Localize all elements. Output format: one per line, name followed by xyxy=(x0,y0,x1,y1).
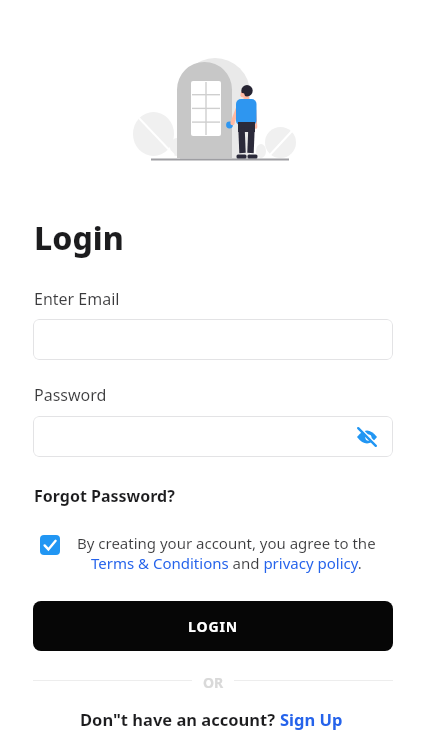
staticText: Login xyxy=(34,216,124,260)
staticText: Enter Email xyxy=(34,288,120,310)
staticText: Don"t have an account? xyxy=(80,708,280,730)
button[interactable] xyxy=(40,535,60,555)
staticText: OR xyxy=(203,673,224,692)
staticText: By creating your account, you agree to t… xyxy=(77,533,376,553)
staticText: Password xyxy=(34,384,107,406)
button[interactable]: Forgot Password? xyxy=(34,485,175,507)
button[interactable]: Sign Up xyxy=(280,708,343,730)
button[interactable]: LOGIN xyxy=(33,601,393,651)
staticText: LOGIN xyxy=(188,617,239,636)
button[interactable] xyxy=(33,416,393,457)
button[interactable] xyxy=(33,319,393,360)
button[interactable]: Terms & Conditions and privacy policy. xyxy=(91,553,362,573)
